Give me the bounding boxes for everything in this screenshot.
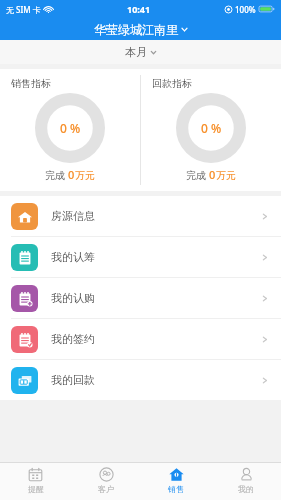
staticText: 提醒 [28, 484, 44, 494]
staticText: 0 [68, 167, 75, 182]
button[interactable]: 我的签约 [0, 319, 281, 359]
button[interactable]: 本月 [115, 42, 167, 62]
button[interactable]: 我的认购 [0, 278, 281, 318]
staticText: 完成 [186, 168, 209, 182]
staticText: 本月 [125, 45, 147, 59]
staticText: 我的回款 [51, 373, 95, 387]
staticText: 回款指标 [152, 77, 192, 90]
staticText: 0 % [60, 120, 81, 136]
staticText: 我的认筹 [51, 250, 95, 264]
staticText: 无 SIM 卡 [6, 4, 41, 15]
staticText: 万元 [216, 169, 236, 182]
staticText: 0 [209, 167, 216, 182]
button[interactable]: 我的认筹 [0, 237, 281, 277]
other: 销售 [169, 467, 184, 482]
button[interactable]: 客户 [71, 463, 141, 500]
button[interactable]: 销售 [141, 463, 211, 500]
other: 提醒 [28, 467, 43, 482]
staticText: 销售 [168, 484, 184, 494]
staticText: 0 % [201, 120, 222, 136]
staticText: 房源信息 [51, 209, 95, 223]
button[interactable]: 提醒 [0, 463, 71, 500]
other: 我的 [239, 467, 254, 482]
staticText: 我的 [238, 484, 254, 494]
staticText: 万元 [75, 169, 95, 182]
staticText: 客户 [98, 484, 114, 494]
other: 客户 [99, 467, 114, 482]
staticText: 100% [235, 4, 256, 15]
staticText: 我的签约 [51, 332, 95, 346]
staticText: 我的认购 [51, 291, 95, 305]
staticText: 华莹绿城江南里 [94, 22, 178, 37]
staticText: 销售指标 [11, 77, 51, 90]
staticText: 完成 [45, 168, 68, 182]
button[interactable]: 房源信息 [0, 196, 281, 236]
button[interactable]: 我的 [211, 463, 281, 500]
button[interactable]: 华莹绿城江南里 [88, 20, 194, 39]
staticText: 10:41 [127, 3, 151, 15]
button[interactable]: 我的回款 [0, 360, 281, 400]
